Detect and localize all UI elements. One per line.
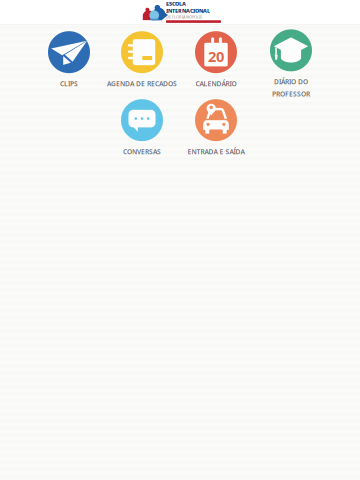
staticText: ESCOLA bbox=[166, 0, 186, 7]
staticText: CLIPS bbox=[60, 79, 78, 88]
staticText: DE FLORIANÓPOLIS bbox=[166, 14, 202, 20]
staticText: INTERNACIONAL bbox=[166, 7, 210, 14]
staticText: AGENDA DE RECADOS bbox=[107, 79, 177, 88]
button[interactable]: ENTRADA E SAÍDA bbox=[187, 99, 244, 156]
staticText: CALENDÁRIO bbox=[195, 79, 236, 88]
button[interactable]: CLIPS bbox=[48, 31, 90, 88]
staticText: PROFESSOR bbox=[272, 89, 310, 98]
button[interactable]: 20 bbox=[195, 31, 237, 88]
button[interactable]: CONVERSAS bbox=[121, 99, 163, 156]
button[interactable]: AGENDA DE RECADOS bbox=[107, 31, 177, 88]
staticText: ENTRADA E SAÍDA bbox=[187, 147, 244, 156]
button[interactable]: DIÁRIO DO bbox=[270, 29, 312, 98]
staticText: CONVERSAS bbox=[123, 147, 161, 156]
staticText: 20 bbox=[208, 47, 224, 66]
staticText: DIÁRIO DO bbox=[274, 77, 308, 86]
